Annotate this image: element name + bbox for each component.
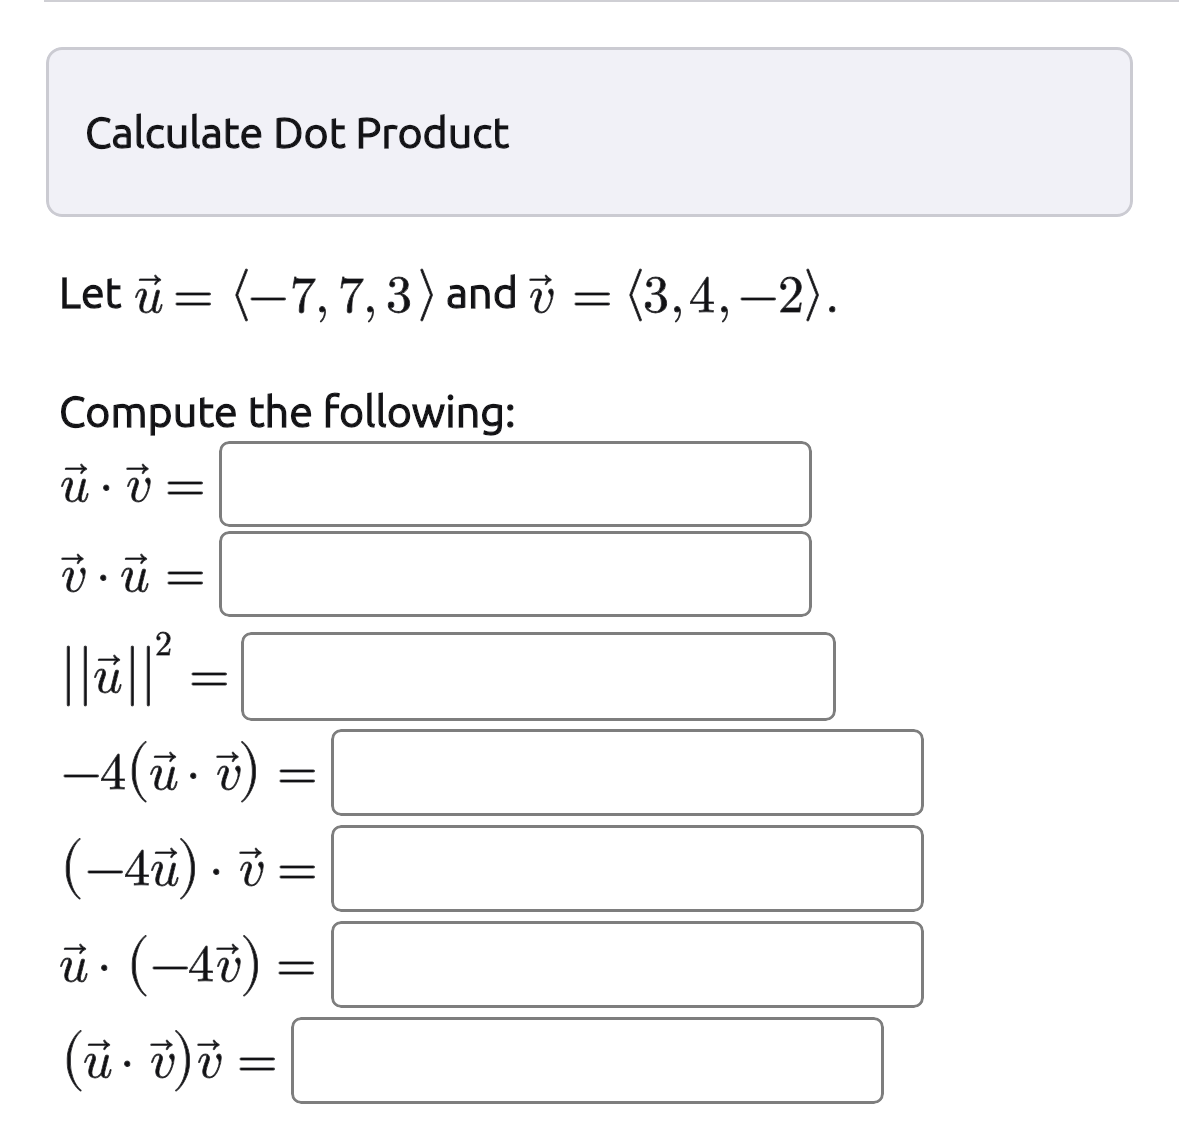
staticText: − xyxy=(61,747,102,799)
staticText: = xyxy=(277,843,318,895)
staticText: ( xyxy=(60,835,84,896)
button[interactable] xyxy=(331,729,924,816)
staticText: 𝑣⃗ xyxy=(216,747,242,799)
staticText: = xyxy=(165,549,206,601)
staticText: 𝑢⃗ xyxy=(120,549,150,601)
staticText: 2 xyxy=(778,270,805,322)
staticText: 4 xyxy=(689,270,716,322)
staticText: Let xyxy=(59,268,122,316)
staticText: ⋅ xyxy=(186,747,201,799)
staticText: 𝑣⃗ xyxy=(126,459,152,511)
staticText: ( xyxy=(126,738,150,799)
staticText: = xyxy=(189,650,230,702)
staticText: 4 xyxy=(124,843,151,895)
staticText: | xyxy=(60,643,77,703)
staticText: ( xyxy=(60,835,84,896)
staticText: 4 xyxy=(689,270,716,322)
staticText: = xyxy=(173,270,214,322)
staticText: ⟩ xyxy=(804,266,825,318)
staticText: , xyxy=(717,270,732,322)
button[interactable]: Calculate Dot Product xyxy=(46,47,1133,217)
staticText: 𝑣⃗ xyxy=(150,1035,176,1087)
staticText: ( xyxy=(126,738,150,799)
staticText: = xyxy=(237,1035,278,1087)
staticText: ⋅ xyxy=(209,843,224,895)
staticText: ⋅ xyxy=(120,1035,135,1087)
staticText: − xyxy=(738,270,779,322)
staticText: | xyxy=(140,643,157,703)
staticText: 𝑣⃗ xyxy=(239,843,265,895)
staticText: 𝑢⃗ xyxy=(59,939,89,991)
staticText: 𝑣⃗ xyxy=(61,549,87,601)
staticText: 4 xyxy=(124,843,151,895)
staticText: 7 xyxy=(290,270,317,322)
staticText: 𝑣⃗ xyxy=(239,843,265,895)
staticText: . xyxy=(825,270,840,322)
staticText: ⋅ xyxy=(99,459,114,511)
staticText: Calculate Dot Product xyxy=(85,108,510,156)
staticText: − xyxy=(248,270,289,322)
staticText: 𝑣⃗ xyxy=(216,747,242,799)
staticText: | xyxy=(77,643,94,703)
staticText: Compute the following: xyxy=(59,387,516,435)
staticText: 4 xyxy=(188,939,215,991)
staticText: 4 xyxy=(188,939,215,991)
staticText: = xyxy=(165,549,206,601)
button[interactable] xyxy=(219,441,812,527)
staticText: = xyxy=(572,270,613,322)
staticText: 7 xyxy=(290,270,317,322)
staticText: ⟩ xyxy=(418,266,439,318)
staticText: 2 xyxy=(155,628,172,662)
staticText: 7 xyxy=(338,270,365,322)
staticText: 𝑣⃗ xyxy=(126,459,152,511)
staticText: − xyxy=(150,939,191,991)
staticText: ⟩ xyxy=(804,266,825,318)
staticText: 3 xyxy=(386,270,413,322)
staticText: 𝑣⃗ xyxy=(197,1035,223,1087)
staticText: ) xyxy=(240,932,264,993)
button[interactable] xyxy=(291,1017,884,1104)
staticText: | xyxy=(60,643,77,703)
staticText: ( xyxy=(61,1027,85,1088)
staticText: 𝑣⃗ xyxy=(216,939,242,991)
staticText: ⋅ xyxy=(96,549,111,601)
staticText: 4 xyxy=(100,747,127,799)
staticText: 𝑣⃗ xyxy=(61,549,87,601)
staticText: ( xyxy=(126,932,150,993)
button[interactable] xyxy=(219,531,812,617)
staticText: ⋅ xyxy=(120,1035,135,1087)
staticText: = xyxy=(173,270,214,322)
staticText: ( xyxy=(61,1027,85,1088)
staticText: ⟩ xyxy=(418,266,439,318)
staticText: = xyxy=(189,650,230,702)
staticText: 𝑢⃗ xyxy=(150,843,180,895)
staticText: 𝑢⃗ xyxy=(150,843,180,895)
staticText: ⋅ xyxy=(186,747,201,799)
staticText: = xyxy=(276,939,317,991)
button[interactable] xyxy=(331,825,924,912)
staticText: , xyxy=(315,270,330,322)
staticText: ( xyxy=(126,932,150,993)
staticText: ) xyxy=(172,1027,196,1088)
staticText: ) xyxy=(177,835,201,896)
staticText: , xyxy=(670,270,685,322)
staticText: , xyxy=(363,270,378,322)
staticText: ⋅ xyxy=(97,939,112,991)
staticText: Calculate Dot Product xyxy=(85,108,510,156)
staticText: ⋅ xyxy=(97,939,112,991)
staticText: ) xyxy=(177,835,201,896)
staticText: 2 xyxy=(778,270,805,322)
staticText: ⟨ xyxy=(624,266,645,318)
button[interactable] xyxy=(331,921,924,1008)
staticText: ⟨ xyxy=(624,266,645,318)
staticText: 𝑢⃗ xyxy=(60,459,90,511)
staticText: = xyxy=(165,459,206,511)
staticText: 𝑣⃗ xyxy=(529,270,555,322)
staticText: Compute the following: xyxy=(59,387,516,435)
staticText: ⋅ xyxy=(96,549,111,601)
button[interactable] xyxy=(241,632,836,721)
staticText: 𝑢⃗ xyxy=(149,747,179,799)
staticText: 𝑣⃗ xyxy=(529,270,555,322)
staticText: ) xyxy=(240,932,264,993)
staticText: ) xyxy=(172,1027,196,1088)
